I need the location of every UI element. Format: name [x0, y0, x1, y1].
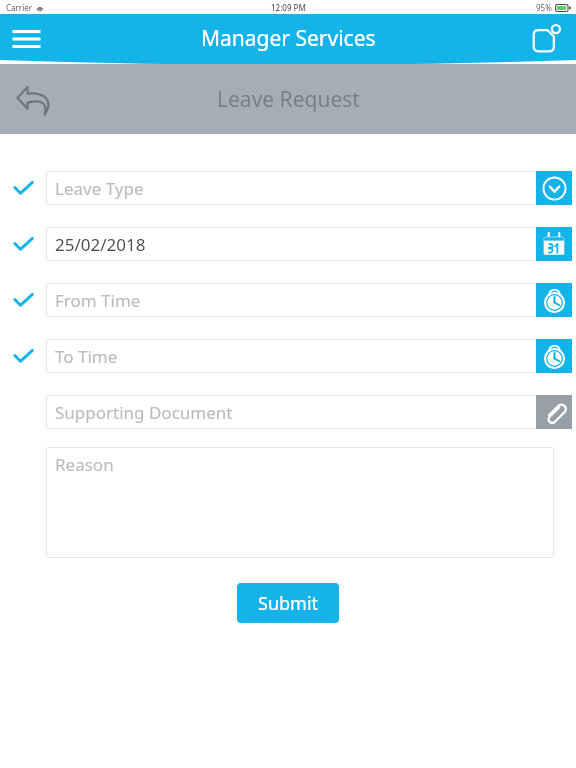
button[interactable]: Leave Type: [46, 171, 554, 205]
button[interactable]: Back: [9, 74, 59, 124]
staticText: Leave Request: [217, 85, 360, 114]
staticText: Reason: [55, 453, 114, 476]
staticText: Supporting Document: [55, 401, 233, 424]
staticText: Manager Services: [201, 24, 376, 53]
staticText: From Time: [55, 289, 141, 312]
staticText: Carrier: [6, 2, 33, 13]
button[interactable]: Attach document: [536, 395, 572, 429]
button[interactable]: Submit: [237, 583, 339, 623]
button[interactable]: Reason: [46, 447, 554, 558]
button[interactable]: Select leave type: [536, 171, 572, 205]
staticText: Submit: [258, 591, 319, 616]
button[interactable]: Supporting Document: [46, 395, 554, 429]
staticText: To Time: [55, 345, 118, 368]
staticText: 95%: [536, 2, 552, 13]
button[interactable]: Pick to time: [536, 339, 572, 373]
button[interactable]: Notifications: [527, 20, 565, 58]
button[interactable]: From Time: [46, 283, 554, 317]
staticText: Leave Type: [55, 177, 144, 200]
button[interactable]: 25/02/2018: [46, 227, 554, 261]
button[interactable]: To Time: [46, 339, 554, 373]
staticText: 25/02/2018: [55, 233, 146, 256]
button[interactable]: Menu: [7, 20, 45, 58]
staticText: 12:09 PM: [271, 2, 306, 13]
button[interactable]: Pick date: [536, 227, 572, 261]
button[interactable]: Pick from time: [536, 283, 572, 317]
